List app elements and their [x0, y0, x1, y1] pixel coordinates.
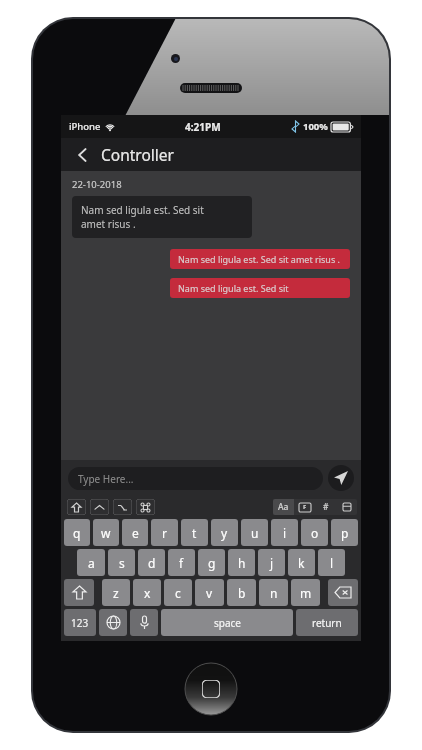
- staticText: b: [238, 585, 246, 601]
- staticText: Aa: [278, 501, 289, 513]
- staticText: u: [251, 525, 259, 541]
- button[interactable]: t: [181, 519, 208, 546]
- staticText: n: [270, 585, 278, 601]
- staticText: o: [311, 525, 319, 541]
- staticText: Nam sed ligula est. Sed sit amet risus .: [81, 203, 204, 231]
- staticText: v: [206, 585, 213, 601]
- button[interactable]: n: [259, 579, 288, 606]
- button[interactable]: y: [211, 519, 238, 546]
- staticText: l: [330, 555, 334, 571]
- button[interactable]: d: [138, 549, 165, 576]
- button[interactable]: [64, 579, 94, 606]
- staticText: 100%: [303, 120, 328, 133]
- button[interactable]: k: [288, 549, 315, 576]
- button[interactable]: z: [102, 579, 130, 606]
- button[interactable]: return: [296, 609, 358, 636]
- staticText: p: [341, 525, 349, 541]
- button[interactable]: q: [64, 519, 90, 546]
- staticText: g: [208, 555, 216, 571]
- button[interactable]: p: [331, 519, 358, 546]
- button[interactable]: b: [227, 579, 256, 606]
- staticText: F: [303, 503, 307, 511]
- button[interactable]: m: [291, 579, 320, 606]
- button[interactable]: [90, 499, 109, 515]
- staticText: iPhone: [69, 120, 101, 133]
- button[interactable]: l: [318, 549, 345, 576]
- button[interactable]: [67, 499, 86, 515]
- button[interactable]: j: [258, 549, 285, 576]
- staticText: s: [119, 555, 125, 571]
- staticText: Nam sed ligula est. Sed sit amet risus .: [178, 253, 340, 265]
- staticText: 22-10-2018: [72, 178, 122, 191]
- button[interactable]: [136, 499, 155, 515]
- button[interactable]: [113, 499, 132, 515]
- staticText: w: [101, 525, 111, 541]
- staticText: 123: [71, 616, 89, 630]
- button[interactable]: [130, 609, 158, 636]
- button[interactable]: c: [164, 579, 192, 606]
- button[interactable]: 123: [64, 609, 96, 636]
- button[interactable]: Nam sed ligula est. Sed sit amet risus .: [72, 196, 252, 238]
- button[interactable]: [328, 579, 358, 606]
- button[interactable]: e: [122, 519, 148, 546]
- button[interactable]: u: [241, 519, 268, 546]
- staticText: #: [323, 501, 329, 513]
- button[interactable]: o: [301, 519, 328, 546]
- button[interactable]: v: [195, 579, 224, 606]
- button[interactable]: r: [151, 519, 178, 546]
- staticText: space: [214, 616, 241, 630]
- staticText: c: [175, 585, 181, 601]
- staticText: 4:21PM: [185, 120, 221, 134]
- button[interactable]: h: [228, 549, 255, 576]
- staticText: k: [298, 555, 305, 571]
- button[interactable]: #: [315, 499, 336, 515]
- button[interactable]: s: [108, 549, 135, 576]
- staticText: r: [162, 525, 167, 541]
- button[interactable]: Nam sed ligula est. Sed sit amet risus .: [170, 249, 350, 269]
- staticText: e: [132, 525, 139, 541]
- button[interactable]: x: [133, 579, 161, 606]
- staticText: q: [73, 525, 81, 541]
- button[interactable]: Home: [185, 663, 237, 715]
- staticText: j: [270, 555, 274, 571]
- button[interactable]: [99, 609, 127, 636]
- staticText: h: [238, 555, 246, 571]
- staticText: t: [192, 525, 197, 541]
- staticText: Nam sed ligula est. Sed sit: [178, 282, 289, 294]
- staticText: i: [283, 525, 287, 541]
- button[interactable]: Nam sed ligula est. Sed sit: [170, 278, 350, 298]
- button[interactable]: w: [93, 519, 119, 546]
- staticText: Type Here...: [78, 472, 134, 486]
- button[interactable]: Aa: [273, 499, 294, 515]
- button[interactable]: g: [198, 549, 225, 576]
- button[interactable]: f: [168, 549, 195, 576]
- staticText: m: [300, 585, 312, 601]
- staticText: return: [312, 616, 342, 630]
- staticText: d: [148, 555, 156, 571]
- button[interactable]: Type Here...: [68, 467, 323, 490]
- staticText: a: [88, 555, 95, 571]
- button[interactable]: [336, 499, 357, 515]
- staticText: z: [113, 585, 119, 601]
- staticText: Controller: [101, 144, 174, 165]
- button[interactable]: F: [294, 499, 315, 515]
- staticText: f: [179, 555, 184, 571]
- button[interactable]: space: [161, 609, 293, 636]
- staticText: y: [221, 525, 228, 541]
- staticText: x: [144, 585, 151, 601]
- button[interactable]: Back: [70, 142, 96, 168]
- button[interactable]: i: [271, 519, 298, 546]
- button[interactable]: a: [77, 549, 105, 576]
- button[interactable]: Send: [328, 465, 354, 491]
